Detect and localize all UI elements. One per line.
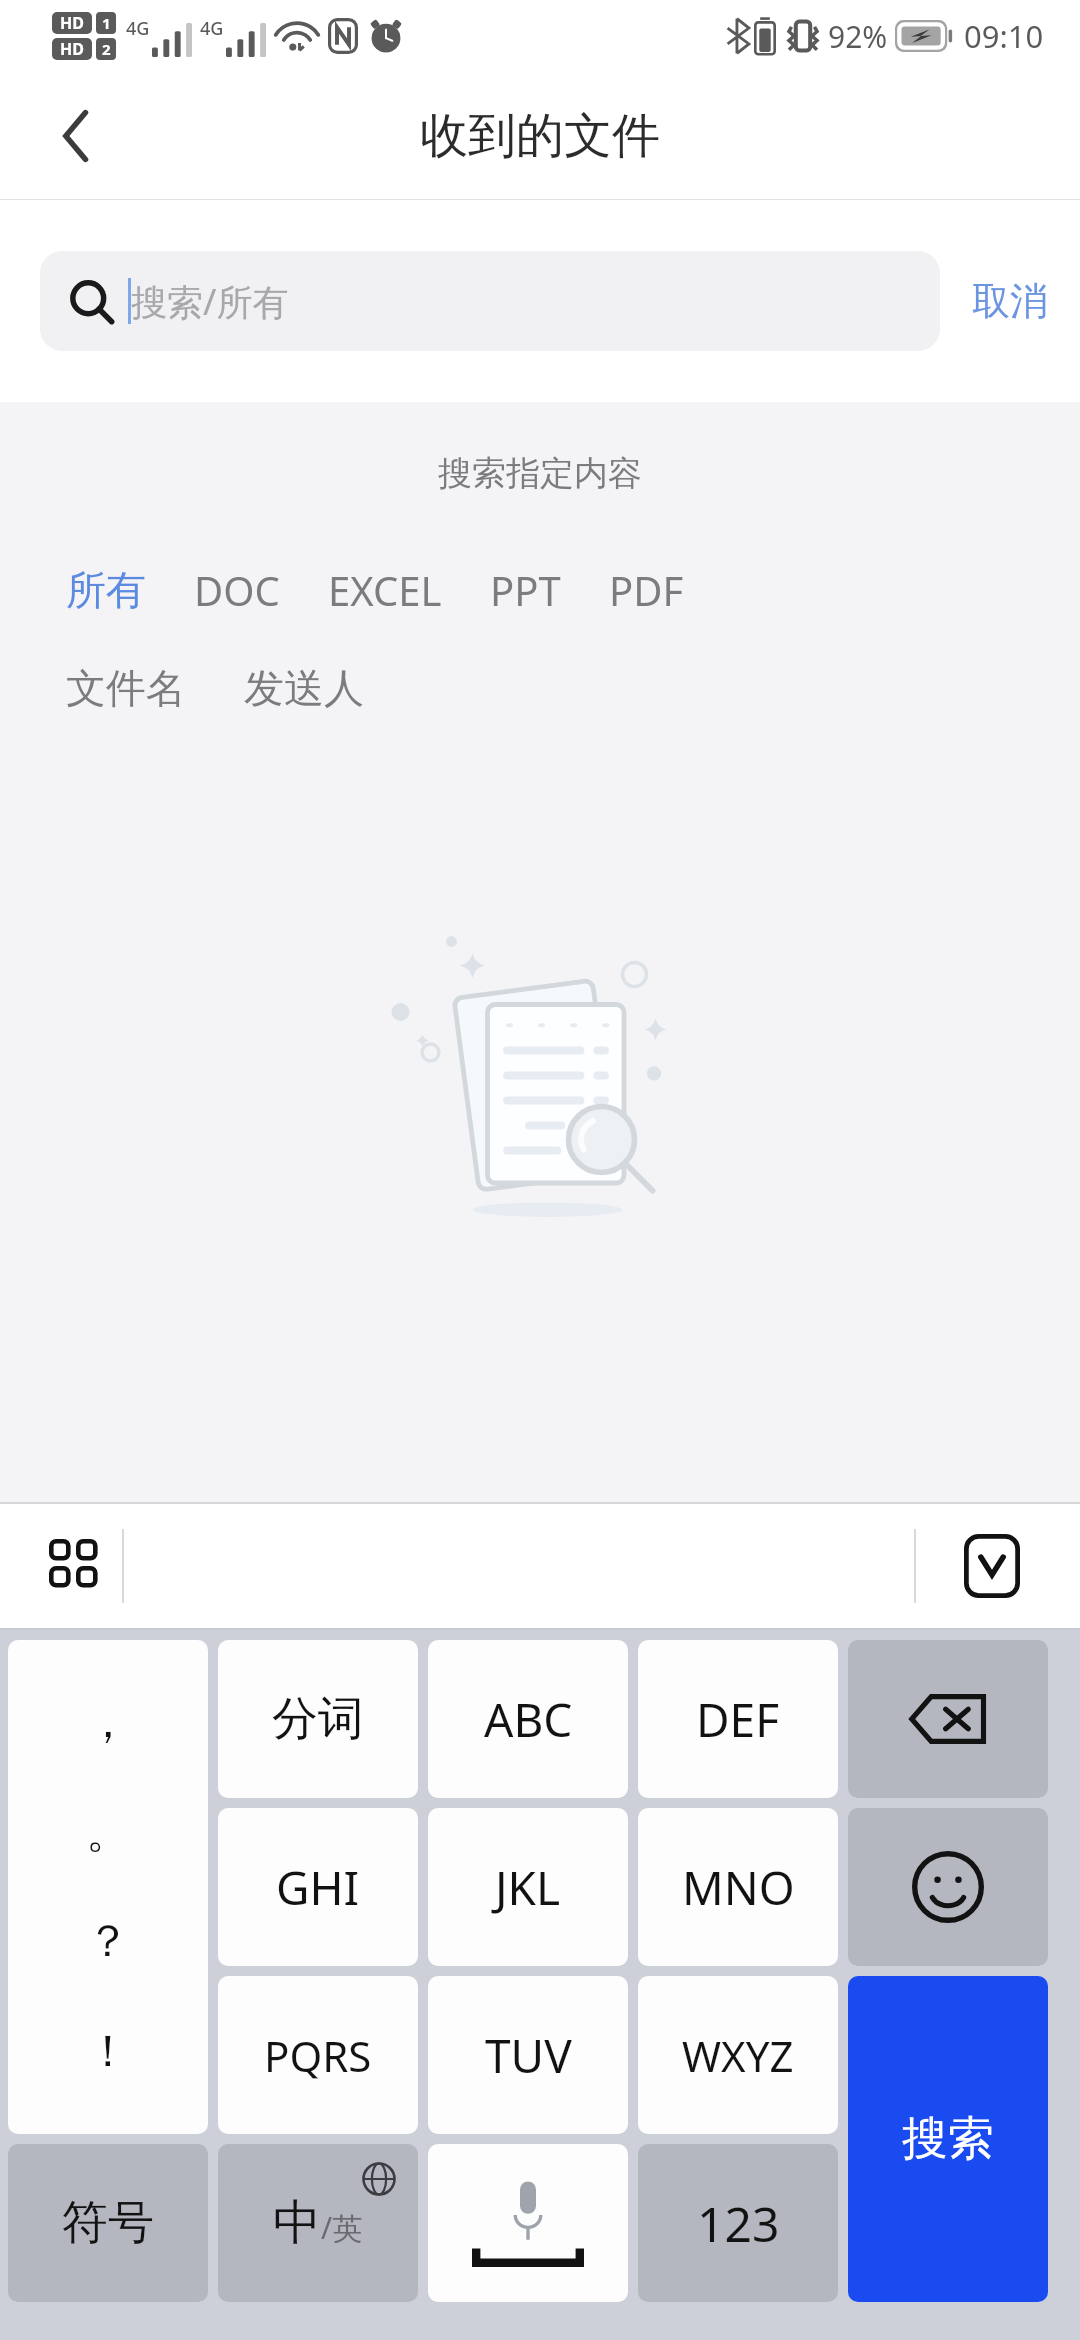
button[interactable]: GHI: [218, 1808, 418, 1966]
staticText: 中: [273, 2193, 321, 2253]
staticText: DEF: [696, 1688, 780, 1751]
button[interactable]: 符号: [8, 2144, 208, 2302]
staticText: 文件名: [66, 663, 186, 713]
button[interactable]: DEF: [638, 1640, 838, 1798]
staticText: ！: [86, 2024, 130, 2079]
button[interactable]: 搜索/所有: [40, 251, 940, 351]
staticText: 09:10: [964, 15, 1044, 57]
button[interactable]: 所有: [66, 557, 146, 623]
button[interactable]: JKL: [428, 1808, 628, 1966]
button[interactable]: 分词: [218, 1640, 418, 1798]
staticText: 收到的文件: [420, 106, 660, 166]
staticText: PPT: [490, 563, 561, 617]
button[interactable]: 文件名: [66, 655, 186, 721]
button[interactable]: PDF: [609, 555, 684, 625]
staticText: 取消: [972, 277, 1048, 325]
button[interactable]: DOC: [194, 555, 280, 625]
button[interactable]: Emoji: [848, 1808, 1048, 1966]
button[interactable]: Keyboard panels: [30, 1520, 122, 1612]
button[interactable]: 123: [638, 2144, 838, 2302]
button[interactable]: PQRS: [218, 1976, 418, 2134]
button[interactable]: ABC: [428, 1640, 628, 1798]
staticText: 搜索: [902, 2110, 994, 2168]
staticText: DOC: [194, 563, 280, 617]
staticText: ？: [86, 1914, 130, 1969]
button[interactable]: Hide keyboard: [946, 1520, 1038, 1612]
button[interactable]: 搜索: [848, 1976, 1048, 2302]
button[interactable]: 中: [218, 2144, 418, 2302]
button[interactable]: EXCEL: [328, 555, 442, 625]
staticText: 92%: [828, 16, 888, 57]
staticText: ，: [86, 1695, 130, 1750]
staticText: /英: [321, 2207, 363, 2248]
staticText: 。: [86, 1805, 130, 1860]
staticText: ABC: [484, 1688, 573, 1751]
button[interactable]: 发送人: [244, 655, 364, 721]
staticText: 搜索/所有: [131, 277, 289, 326]
staticText: 123: [697, 2191, 780, 2256]
staticText: MNO: [682, 1856, 795, 1919]
button[interactable]: 取消: [950, 259, 1070, 343]
staticText: 发送人: [244, 663, 364, 713]
staticText: 符号: [62, 2194, 154, 2252]
staticText: 分词: [272, 1690, 364, 1748]
staticText: WXYZ: [682, 2027, 794, 2084]
button[interactable]: Backspace: [848, 1640, 1048, 1798]
button[interactable]: ，: [8, 1640, 208, 2134]
button[interactable]: MNO: [638, 1808, 838, 1966]
staticText: PQRS: [264, 2027, 372, 2084]
staticText: 4G: [126, 16, 150, 41]
button[interactable]: PPT: [490, 555, 561, 625]
button[interactable]: TUV: [428, 1976, 628, 2134]
staticText: JKL: [495, 1856, 561, 1919]
staticText: GHI: [276, 1856, 360, 1919]
staticText: EXCEL: [328, 563, 442, 617]
staticText: 2: [102, 39, 111, 59]
staticText: HD: [60, 38, 84, 60]
staticText: PDF: [609, 563, 684, 617]
staticText: 搜索指定内容: [0, 452, 1080, 495]
button[interactable]: WXYZ: [638, 1976, 838, 2134]
staticText: 4G: [200, 16, 224, 41]
staticText: HD: [60, 12, 84, 34]
staticText: 所有: [66, 565, 146, 615]
staticText: 1: [102, 13, 111, 33]
staticText: TUV: [485, 2024, 572, 2087]
button[interactable]: Back: [26, 86, 126, 186]
button[interactable]: Space, voice input: [428, 2144, 628, 2302]
